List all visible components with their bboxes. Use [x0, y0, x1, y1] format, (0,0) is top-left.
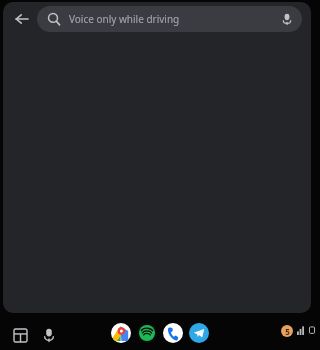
button[interactable]: Voice only while driving: [37, 6, 302, 32]
button[interactable]: App: [189, 323, 209, 343]
staticText: Voice only while driving: [69, 12, 180, 26]
button[interactable]: Voice search: [276, 8, 298, 30]
button[interactable]: App: [163, 323, 183, 343]
button[interactable]: App: [111, 323, 131, 343]
button[interactable]: Microphone: [37, 323, 61, 347]
staticText: 5: [285, 326, 290, 337]
button[interactable]: Apps: [8, 323, 32, 347]
button[interactable]: Back: [8, 5, 36, 33]
button[interactable]: App: [137, 323, 157, 343]
